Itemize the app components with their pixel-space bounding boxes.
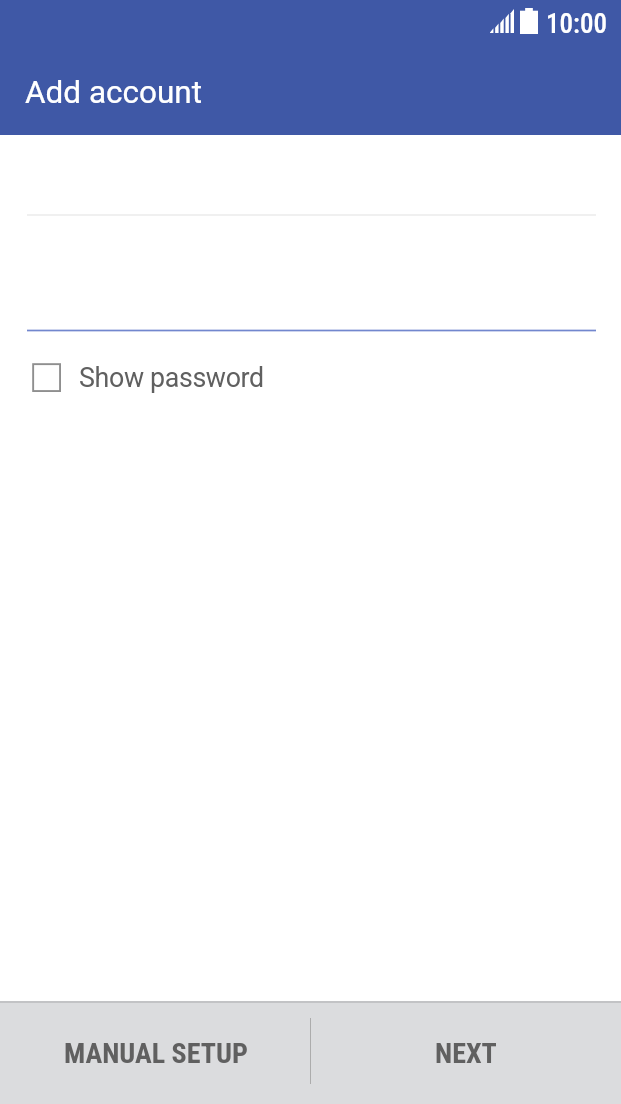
staticText: Show password: [79, 362, 264, 393]
staticText: Add account: [25, 74, 203, 111]
staticText: MANUAL SETUP: [64, 1037, 248, 1070]
button[interactable]: NEXT: [311, 1001, 621, 1104]
other: Cellular signal: [490, 9, 514, 33]
staticText: NEXT: [435, 1037, 497, 1070]
other: Battery: [520, 8, 538, 34]
button[interactable]: MANUAL SETUP: [0, 1001, 311, 1104]
button[interactable]: Password: [27, 266, 596, 331]
staticText: 10:00: [546, 8, 607, 40]
button[interactable]: Show password: [20, 353, 264, 401]
